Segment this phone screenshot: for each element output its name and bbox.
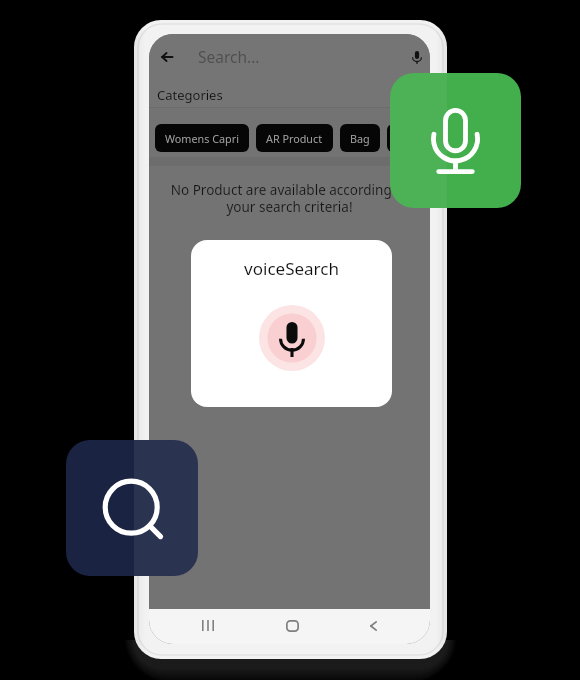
staticText: Search... bbox=[198, 46, 260, 67]
staticText: Categories bbox=[157, 86, 223, 104]
button[interactable]: Voice search bbox=[390, 73, 521, 208]
button[interactable]: Voice input bbox=[403, 44, 429, 70]
button[interactable]: Start voice search bbox=[259, 305, 325, 371]
button[interactable]: Cap bbox=[387, 124, 427, 152]
staticText: No Product are available according to yo… bbox=[159, 181, 420, 216]
staticText: Womens Capri bbox=[165, 131, 239, 146]
button[interactable]: Recent apps bbox=[193, 611, 222, 640]
staticText: AR Product bbox=[266, 131, 323, 146]
button[interactable]: AR Product bbox=[256, 124, 333, 152]
button[interactable]: Back bbox=[154, 43, 180, 69]
staticText: Bag bbox=[350, 131, 370, 146]
button[interactable]: Home bbox=[278, 611, 307, 640]
button[interactable]: Back bbox=[359, 611, 388, 640]
button[interactable]: Bag bbox=[340, 124, 380, 152]
button[interactable]: Womens Capri bbox=[155, 124, 249, 152]
staticText: voiceSearch bbox=[191, 257, 392, 280]
button[interactable]: Search bbox=[66, 440, 198, 576]
button[interactable]: voiceSearch bbox=[191, 240, 392, 407]
